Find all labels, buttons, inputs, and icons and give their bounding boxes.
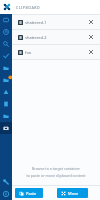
- button[interactable]: shattered-1: [12, 15, 100, 29]
- button[interactable]: Navigation item: [0, 26, 12, 38]
- button[interactable]: Navigation item: [0, 98, 12, 110]
- button[interactable]: Move: [57, 188, 88, 198]
- button[interactable]: shattered-2: [12, 30, 100, 44]
- button[interactable]: Remove shattered-1: [86, 17, 96, 27]
- button[interactable]: Navigation item: [0, 38, 12, 50]
- staticText: Browse to a target container: [12, 166, 100, 171]
- button[interactable]: App logo: [3, 3, 11, 11]
- staticText: Move: [68, 191, 79, 196]
- staticText: shattered-1: [25, 20, 47, 25]
- button[interactable]: Remove shattered-2: [86, 32, 96, 42]
- button[interactable]: Navigation item: [0, 74, 12, 86]
- button[interactable]: Navigation item: [0, 110, 12, 122]
- button[interactable]: Navigation item: [0, 50, 12, 62]
- staticText: CLIPBOARD: [16, 5, 41, 10]
- button[interactable]: Navigation item: [0, 86, 12, 98]
- staticText: to paste or move clipboard content: [12, 173, 100, 178]
- button[interactable]: Paste: [15, 188, 43, 198]
- button[interactable]: Remove foo: [86, 47, 96, 57]
- button[interactable]: Navigation item: [0, 188, 12, 200]
- button[interactable]: Navigation item: [0, 176, 12, 188]
- button[interactable]: Navigation item: [0, 62, 12, 74]
- staticText: shattered-2: [25, 35, 47, 40]
- button[interactable]: Clipboard: [0, 122, 12, 134]
- staticText: Paste: [26, 191, 37, 196]
- button[interactable]: foo: [12, 45, 100, 59]
- staticText: foo: [25, 50, 32, 55]
- button[interactable]: Navigation item: [0, 14, 12, 26]
